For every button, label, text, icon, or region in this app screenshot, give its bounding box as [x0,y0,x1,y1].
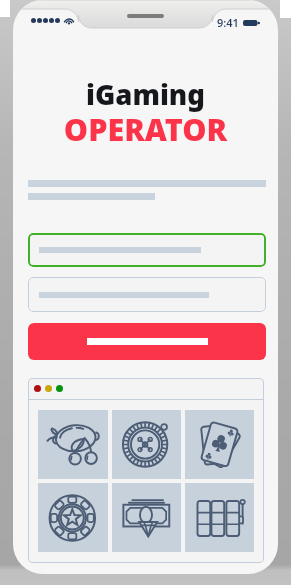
staticText: 9:41 [217,15,239,30]
button[interactable] [28,277,266,312]
button[interactable]: Payouts [112,483,181,552]
button[interactable] [28,323,266,360]
button[interactable] [28,233,266,267]
button[interactable]: Slot machine [185,483,254,552]
button[interactable]: Card games [185,410,254,479]
staticText: iGaming [13,76,278,113]
staticText: OPERATOR [13,108,278,150]
button[interactable]: Roulette [112,410,181,479]
button[interactable]: Slots fruit [38,410,108,479]
button[interactable]: Poker chips [38,483,108,552]
